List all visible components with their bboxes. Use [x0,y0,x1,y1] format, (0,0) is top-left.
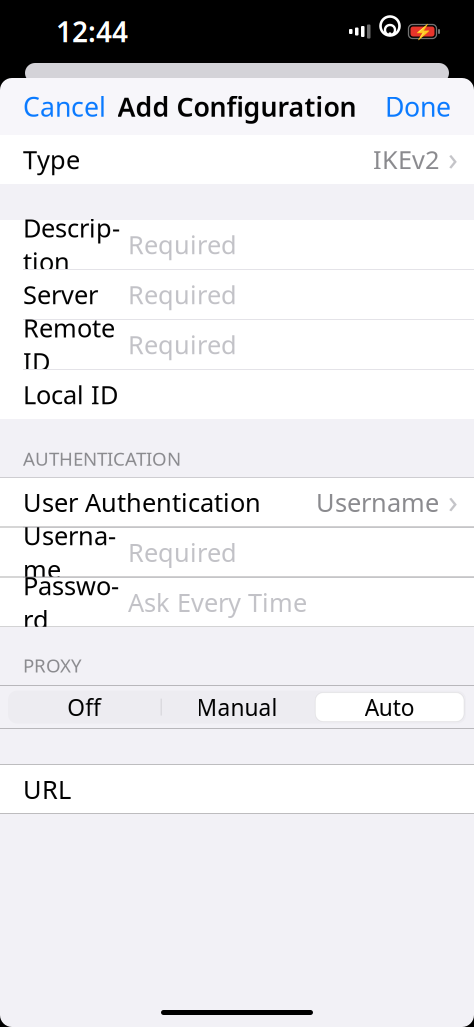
staticText: Done [385,89,451,124]
button[interactable]: URL [0,765,474,814]
button[interactable]: Local ID [0,370,474,419]
staticText: AUTHENTICATION [23,446,181,471]
staticText: Local ID [23,378,118,411]
staticText: User Authentication [23,485,261,519]
staticText: Type [23,143,80,176]
staticText: Auto [365,692,415,722]
staticText: Off [67,692,101,722]
staticText: Cancel [23,89,106,124]
staticText: 12:44 [56,13,128,50]
staticText: Required [128,328,237,361]
button[interactable]: Manual [161,691,313,724]
button[interactable]: Description [0,220,474,269]
staticText: Required [128,535,237,569]
button[interactable]: Remote ID [0,320,474,369]
staticText: URL [23,772,71,806]
staticText: Manual [196,692,277,722]
staticText: PROXY [23,653,82,678]
staticText: Required [128,278,237,311]
button[interactable]: Type [0,135,474,184]
staticText: IKEv2 [373,143,439,176]
staticText: Server [23,278,98,311]
button[interactable]: Cancel [0,77,118,136]
button[interactable]: Username [0,528,474,577]
button[interactable]: Password [0,578,474,627]
staticText: Ask Every Time [128,585,307,619]
button[interactable]: Server [0,270,474,319]
staticText: Username [23,519,116,586]
staticText: › [448,479,458,522]
button[interactable]: User Authentication [0,478,474,527]
staticText: Description [23,211,120,278]
button[interactable]: Auto [313,691,466,724]
staticText: Required [128,228,237,261]
button[interactable]: Done [373,77,474,136]
staticText: ⚡ [413,23,431,40]
staticText: Remote ID [23,311,115,378]
staticText: Username [316,485,439,519]
staticText: Add Configuration [117,89,356,124]
staticText: Password [23,569,119,636]
button[interactable]: Off [8,691,161,724]
staticText: › [448,137,458,179]
